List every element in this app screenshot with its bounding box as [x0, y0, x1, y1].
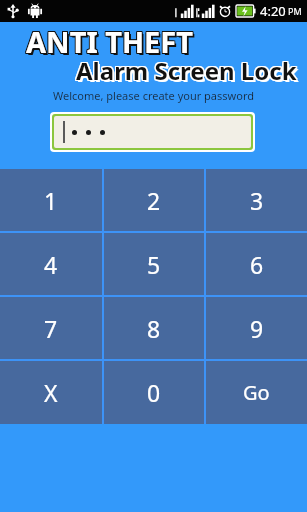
staticText: Alarm Screen Lock [76, 53, 297, 81]
button[interactable]: 7 [0, 297, 102, 359]
staticText: ANTI THEFT [25, 23, 193, 55]
staticText: 4:20 [260, 2, 286, 20]
staticText: Alarm Screen Lock [75, 54, 296, 82]
staticText: 2 [147, 185, 161, 216]
staticText: ANTI THEFT [27, 21, 195, 53]
staticText: 5 [147, 249, 161, 280]
button[interactable]: 5 [104, 233, 204, 295]
staticText: 8 [147, 313, 161, 344]
staticText: 3 [250, 185, 264, 216]
button[interactable]: Go [206, 361, 307, 424]
button[interactable]: 0 [104, 361, 204, 424]
button[interactable]: 4 [0, 233, 102, 295]
staticText: Alarm Screen Lock [76, 54, 297, 82]
button[interactable]: X [0, 361, 102, 424]
staticText: 0 [147, 377, 161, 408]
staticText: ANTI THEFT [27, 23, 195, 55]
button[interactable]: 6 [206, 233, 307, 295]
staticText: ANTI THEFT [26, 21, 194, 53]
staticText: Alarm Screen Lock [78, 56, 299, 84]
button[interactable] [54, 116, 251, 148]
staticText: X [44, 377, 58, 408]
staticText: Go [243, 379, 270, 406]
staticText: Welcome, please create your password [0, 88, 307, 103]
staticText: Alarm Screen Lock [77, 54, 298, 82]
staticText: ANTI THEFT [25, 22, 193, 54]
staticText: 7 [44, 313, 58, 344]
staticText: ANTI THEFT [25, 21, 193, 53]
button[interactable]: 3 [206, 169, 307, 231]
staticText: ANTI THEFT [28, 24, 196, 56]
button[interactable]: 8 [104, 297, 204, 359]
staticText: 4 [44, 249, 58, 280]
staticText: 6 [250, 249, 264, 280]
staticText: ANTI THEFT [27, 22, 195, 54]
staticText: Alarm Screen Lock [77, 53, 298, 81]
button[interactable]: 9 [206, 297, 307, 359]
staticText: 1 [44, 185, 58, 216]
staticText: 9 [250, 313, 264, 344]
staticText: PM [288, 5, 302, 17]
button[interactable]: 2 [104, 169, 204, 231]
staticText: Alarm Screen Lock [77, 55, 298, 83]
staticText: ANTI THEFT [26, 23, 194, 55]
staticText: Alarm Screen Lock [76, 55, 297, 83]
staticText: Alarm Screen Lock [75, 55, 296, 83]
staticText: Alarm Screen Lock [75, 53, 296, 81]
button[interactable]: 1 [0, 169, 102, 231]
staticText: ANTI THEFT [26, 22, 194, 54]
